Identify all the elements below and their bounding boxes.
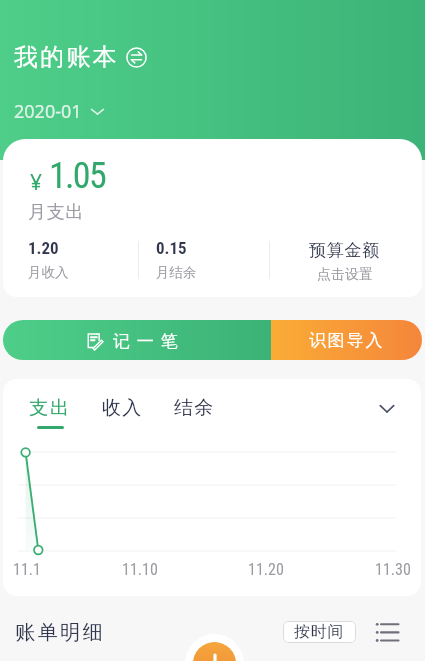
- button[interactable]: 2020-01: [14, 99, 104, 124]
- staticText: 月收入: [28, 264, 69, 281]
- staticText: 支出: [29, 396, 72, 420]
- staticText: 11.1: [13, 560, 41, 579]
- other: Switch book: [126, 47, 147, 68]
- button[interactable]: 我的账本: [14, 42, 147, 72]
- button[interactable]: 支出: [29, 396, 72, 420]
- staticText: 我的账本: [14, 42, 119, 72]
- staticText: 月支出: [28, 201, 85, 224]
- button[interactable]: Sort options: [374, 620, 400, 646]
- staticText: 按时间: [294, 622, 345, 642]
- button[interactable]: 收入: [102, 396, 143, 420]
- button[interactable]: 账单明细: [14, 620, 104, 645]
- staticText: 月结余: [156, 264, 197, 281]
- staticText: 11.10: [122, 560, 158, 579]
- staticText: 11.30: [375, 560, 411, 579]
- button[interactable]: 结余: [174, 396, 215, 420]
- staticText: 1.20: [28, 238, 59, 258]
- staticText: ¥: [30, 168, 43, 197]
- button[interactable]: Expand chart: [375, 396, 399, 420]
- button[interactable]: Add record: [193, 642, 236, 661]
- button[interactable]: 记 一 笔: [3, 320, 271, 360]
- button[interactable]: 按时间: [283, 621, 356, 643]
- staticText: 2020-01: [14, 99, 82, 124]
- staticText: 识图导入: [309, 330, 385, 351]
- button[interactable]: 预算金额: [309, 240, 381, 261]
- staticText: 记 一 笔: [113, 329, 179, 352]
- staticText: 11.20: [248, 560, 284, 579]
- staticText: 点击设置: [317, 266, 373, 284]
- staticText: 1.05: [49, 155, 106, 197]
- button[interactable]: 识图导入: [271, 320, 422, 360]
- staticText: 0.15: [156, 238, 187, 258]
